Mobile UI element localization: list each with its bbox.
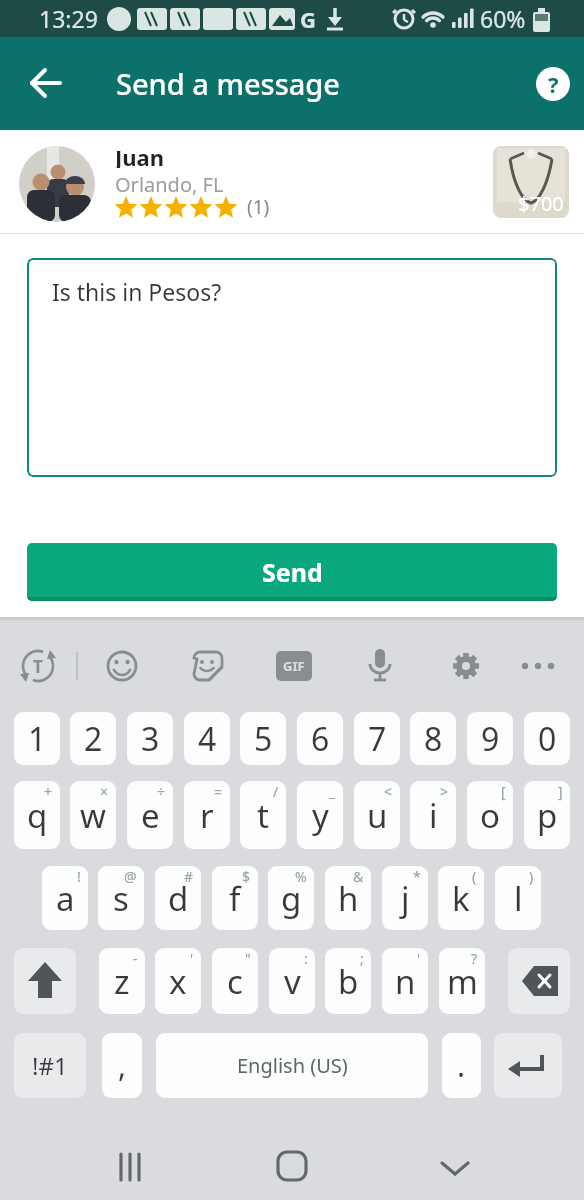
button[interactable]: English (US) xyxy=(156,1033,428,1098)
staticText: (1) xyxy=(247,194,270,220)
button[interactable]: T xyxy=(16,646,60,686)
button[interactable]: 9 xyxy=(467,712,513,765)
staticText: b xyxy=(338,959,359,1004)
staticText: r xyxy=(200,793,214,838)
button[interactable]: g xyxy=(268,866,314,930)
button[interactable] xyxy=(20,57,72,109)
staticText: ' xyxy=(417,949,421,968)
button[interactable]: 0 xyxy=(524,712,570,765)
staticText: # xyxy=(184,867,194,886)
staticText: - xyxy=(133,949,138,968)
button[interactable]: 1 xyxy=(14,712,60,765)
button[interactable] xyxy=(449,649,483,683)
button[interactable]: k xyxy=(438,866,484,930)
button[interactable]: y xyxy=(297,781,343,849)
button[interactable]: j xyxy=(382,866,428,930)
button[interactable] xyxy=(104,1140,160,1196)
button[interactable]: w xyxy=(70,781,116,849)
button[interactable] xyxy=(494,1033,562,1098)
button[interactable]: Juan xyxy=(0,130,584,233)
staticText: : xyxy=(304,949,308,968)
button[interactable]: c xyxy=(212,948,258,1014)
staticText: o xyxy=(480,793,500,838)
staticText: h xyxy=(338,876,359,921)
button[interactable]: q xyxy=(14,781,60,849)
button[interactable]: $700 xyxy=(493,146,569,218)
button[interactable]: s xyxy=(98,866,144,930)
staticText: e xyxy=(141,793,160,838)
button[interactable]: x xyxy=(155,948,201,1014)
button[interactable]: 8 xyxy=(410,712,456,765)
button[interactable] xyxy=(14,948,76,1014)
staticText: 8 xyxy=(424,717,443,761)
button[interactable]: 3 xyxy=(127,712,173,765)
button[interactable]: i xyxy=(410,781,456,849)
button[interactable]: ? xyxy=(536,67,570,101)
staticText: ' xyxy=(190,949,194,968)
button[interactable]: z xyxy=(99,948,145,1014)
staticText: $700 xyxy=(518,190,564,217)
staticText: a xyxy=(56,876,75,921)
staticText: ÷ xyxy=(157,782,166,801)
button[interactable]: n xyxy=(382,948,428,1014)
button[interactable]: f xyxy=(212,866,258,930)
button[interactable] xyxy=(508,948,570,1014)
staticText: q xyxy=(27,793,48,838)
staticText: 2 xyxy=(84,717,103,761)
staticText: _ xyxy=(329,782,336,801)
button[interactable]: u xyxy=(354,781,400,849)
button[interactable]: . xyxy=(442,1033,481,1098)
staticText: ? xyxy=(471,949,478,968)
button[interactable]: h xyxy=(325,866,371,930)
staticText: 7 xyxy=(368,717,387,761)
button[interactable]: p xyxy=(524,781,570,849)
button[interactable]: l xyxy=(495,866,541,930)
button[interactable]: 6 xyxy=(297,712,343,765)
staticText: 5 xyxy=(254,717,273,761)
button[interactable] xyxy=(519,658,559,674)
staticText: s xyxy=(113,876,129,921)
button[interactable]: t xyxy=(240,781,286,849)
staticText: p xyxy=(537,793,558,838)
button[interactable]: d xyxy=(155,866,201,930)
button[interactable]: , xyxy=(102,1033,142,1098)
staticText: " xyxy=(245,949,251,968)
staticText: Juan xyxy=(115,142,165,168)
button[interactable]: v xyxy=(269,948,315,1014)
button[interactable]: o xyxy=(467,781,513,849)
button[interactable]: m xyxy=(439,948,485,1014)
staticText: G xyxy=(300,4,316,34)
staticText: g xyxy=(281,876,302,921)
button[interactable]: Is this in Pesos? xyxy=(27,258,557,477)
button[interactable]: r xyxy=(184,781,230,849)
staticText: t xyxy=(257,793,269,838)
button[interactable]: e xyxy=(127,781,173,849)
button[interactable]: Send xyxy=(27,543,557,601)
button[interactable]: b xyxy=(325,948,371,1014)
staticText: w xyxy=(80,793,106,838)
button[interactable]: a xyxy=(42,866,88,930)
button[interactable]: GIF xyxy=(276,651,312,681)
staticText: , xyxy=(118,1045,127,1086)
button[interactable] xyxy=(363,647,397,687)
button[interactable]: !#1 xyxy=(14,1033,86,1098)
button[interactable]: 7 xyxy=(354,712,400,765)
staticText: 60% xyxy=(480,3,526,34)
staticText: l xyxy=(514,876,523,921)
staticText: T xyxy=(33,655,43,678)
staticText: j xyxy=(401,876,410,921)
staticText: [ xyxy=(501,782,506,801)
staticText: English (US) xyxy=(237,1052,348,1079)
staticText: f xyxy=(229,876,241,921)
button[interactable]: 2 xyxy=(70,712,116,765)
button[interactable]: 4 xyxy=(184,712,230,765)
button[interactable] xyxy=(191,649,225,683)
button[interactable]: 5 xyxy=(240,712,286,765)
button[interactable] xyxy=(427,1140,483,1196)
staticText: m xyxy=(447,959,478,1004)
button[interactable] xyxy=(105,649,139,683)
staticText: ] xyxy=(558,782,563,801)
staticText: Is this in Pesos? xyxy=(52,276,222,307)
button[interactable] xyxy=(264,1140,320,1196)
staticText: + xyxy=(44,782,53,801)
